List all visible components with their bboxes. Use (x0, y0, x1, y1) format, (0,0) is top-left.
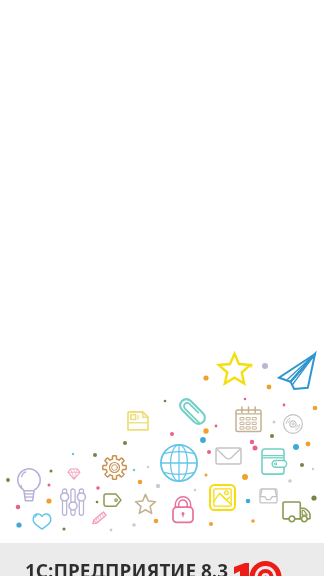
button[interactable]: 1C:ПРЕДПРИЯТИЕ 8.3 (0, 0, 324, 576)
button[interactable]: 1C:ПРЕДПРИЯТИЕ 8.3 (0, 543, 324, 576)
staticText: 1C:ПРЕДПРИЯТИЕ 8.3 (25, 558, 229, 576)
